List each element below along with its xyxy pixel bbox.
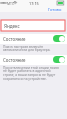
staticText: МТС xyxy=(7,1,15,6)
button[interactable] xyxy=(0,34,67,44)
staticText: Поиск настроек включён автоматически для… xyxy=(3,44,60,52)
button[interactable]: Готово xyxy=(45,6,67,12)
staticText: Готово xyxy=(48,7,62,11)
button[interactable]: Toggle xyxy=(53,35,65,42)
staticText: При отключении этой опции поиск не будет… xyxy=(3,65,61,81)
button[interactable]: Яндекс xyxy=(1,20,65,31)
button[interactable] xyxy=(0,55,67,65)
staticText: Состояние xyxy=(3,57,26,63)
staticText: 17:15 xyxy=(29,1,39,6)
staticText: Состояние xyxy=(3,36,26,42)
button[interactable]: Toggle xyxy=(53,56,65,63)
staticText: Яндекс xyxy=(4,23,20,29)
